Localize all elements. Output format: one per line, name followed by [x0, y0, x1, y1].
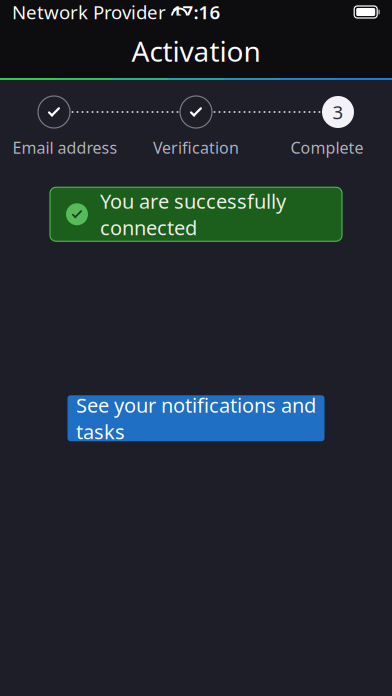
staticText: Activation: [131, 32, 260, 70]
staticText: 17:16: [171, 0, 220, 24]
staticText: See your notifications and tasks: [76, 392, 316, 445]
staticText: You are successfully connected: [100, 188, 286, 241]
staticText: 3: [332, 100, 343, 124]
button[interactable]: See your notifications and tasks: [67, 395, 324, 441]
staticText: Verification: [153, 137, 239, 158]
staticText: Network Provider: [12, 0, 166, 24]
staticText: Complete: [290, 137, 363, 158]
staticText: Email address: [12, 137, 117, 158]
